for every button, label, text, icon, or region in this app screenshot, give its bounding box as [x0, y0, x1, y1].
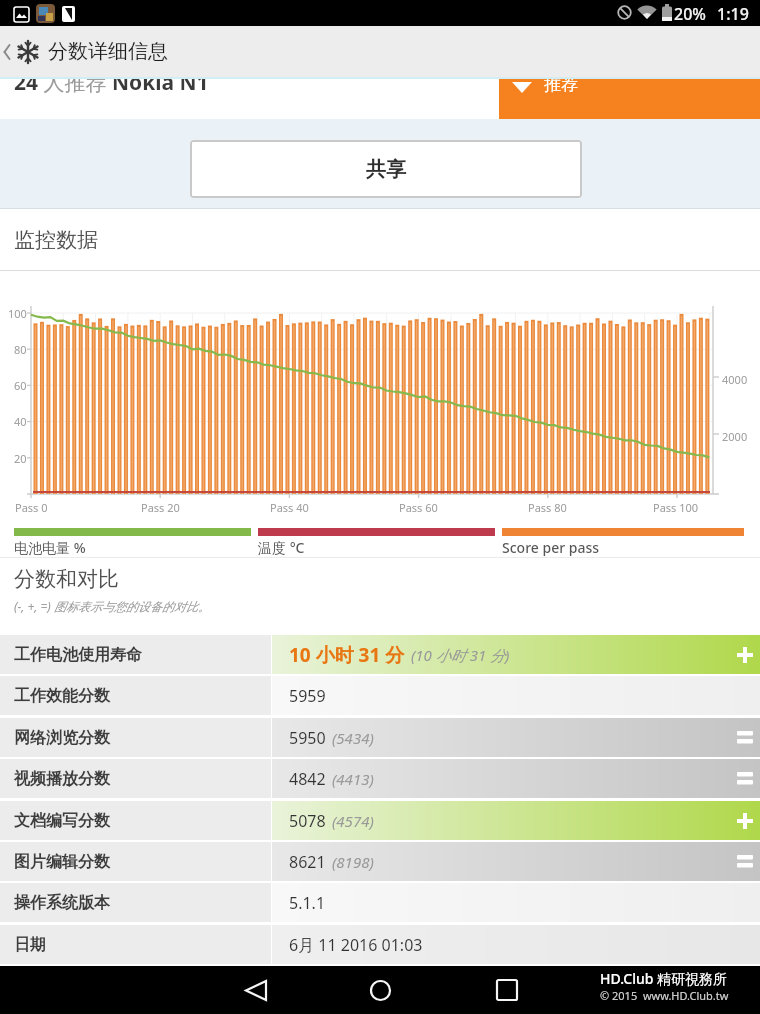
- staticText: Pass 20: [141, 500, 180, 514]
- staticText: 视频播放分数: [14, 769, 110, 789]
- staticText: HD.Club 精研視務所: [600, 969, 728, 988]
- staticText: (4574): [332, 811, 374, 831]
- button[interactable]: 分数详细信息: [0, 26, 168, 77]
- staticText: (10 小时 31 分): [411, 645, 510, 665]
- staticText: (-, +, =) 图标表示与您的设备的对比。: [14, 598, 210, 614]
- staticText: Pass 100: [653, 500, 699, 514]
- staticText: Score per pass: [502, 538, 600, 557]
- staticText: 20: [14, 451, 27, 465]
- button[interactable]: [359, 970, 401, 1010]
- staticText: (5434): [332, 728, 374, 748]
- staticText: 1:19: [717, 3, 749, 25]
- staticText: 6月 11 2016 01:03: [289, 934, 423, 956]
- button[interactable]: 图片编辑分数: [0, 842, 760, 881]
- staticText: 日期: [14, 935, 46, 955]
- button[interactable]: 文档编写分数: [0, 801, 760, 840]
- staticText: (4413): [332, 769, 374, 789]
- staticText: 文档编写分数: [14, 811, 110, 831]
- staticText: 8621: [289, 851, 326, 873]
- button[interactable]: 视频播放分数: [0, 759, 760, 798]
- staticText: 5950: [289, 727, 326, 749]
- button[interactable]: 推荐: [499, 79, 760, 119]
- staticText: 24 人推荐 Nokia N1: [14, 79, 209, 97]
- staticText: 60: [14, 378, 27, 392]
- staticText: 温度 °C: [258, 538, 305, 557]
- staticText: 40: [14, 414, 27, 428]
- staticText: © 2015 www.HD.Club.tw: [600, 988, 729, 1003]
- staticText: 分数详细信息: [48, 39, 168, 64]
- staticText: 共享: [366, 157, 406, 182]
- button[interactable]: 日期: [0, 925, 760, 964]
- staticText: 图片编辑分数: [14, 852, 110, 872]
- staticText: 100: [8, 306, 27, 320]
- button[interactable]: 工作电池使用寿命: [0, 635, 760, 674]
- staticText: Pass 80: [528, 500, 567, 514]
- staticText: (8198): [332, 852, 374, 872]
- button[interactable]: [235, 970, 277, 1010]
- staticText: 80: [14, 342, 27, 356]
- button[interactable]: 共享: [190, 140, 582, 198]
- staticText: 分数和对比: [14, 566, 119, 592]
- staticText: 20%: [674, 3, 706, 25]
- staticText: 操作系统版本: [14, 893, 110, 913]
- staticText: 工作电池使用寿命: [14, 645, 142, 665]
- staticText: Pass 0: [15, 500, 48, 514]
- button[interactable]: 工作效能分数: [0, 676, 760, 715]
- staticText: 监控数据: [14, 227, 98, 253]
- staticText: 4842: [289, 768, 326, 790]
- staticText: 5.1.1: [289, 892, 326, 914]
- staticText: Pass 40: [270, 500, 309, 514]
- button[interactable]: 网络浏览分数: [0, 718, 760, 757]
- staticText: 电池电量 %: [14, 538, 86, 557]
- button[interactable]: [486, 970, 528, 1010]
- staticText: 5078: [289, 810, 326, 832]
- button[interactable]: 操作系统版本: [0, 883, 760, 922]
- staticText: 工作效能分数: [14, 686, 110, 706]
- staticText: Pass 60: [399, 500, 438, 514]
- staticText: 2000: [722, 429, 748, 444]
- staticText: 10 小时 31 分: [289, 642, 405, 668]
- staticText: 推荐: [544, 79, 578, 95]
- staticText: 4000: [722, 372, 748, 387]
- staticText: 网络浏览分数: [14, 728, 110, 748]
- staticText: 5959: [289, 685, 326, 707]
